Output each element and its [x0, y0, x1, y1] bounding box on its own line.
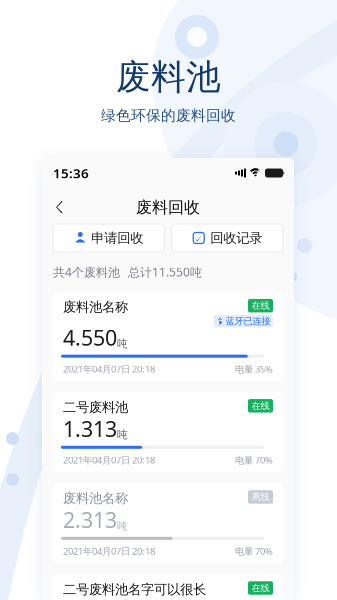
staticText: 2021年04月07日 20:18 — [63, 454, 155, 466]
staticText: 废料回收 — [136, 198, 200, 217]
staticText: 申请回收 — [91, 230, 143, 246]
staticText: 在线 — [251, 300, 269, 311]
staticText: 蓝牙已连接 — [225, 315, 270, 327]
staticText: 二号废料池名字可以很长 — [63, 581, 206, 598]
staticText: 15:36 — [53, 164, 89, 182]
button[interactable]: 废料池名称 — [53, 483, 283, 563]
staticText: 2021年04月07日 20:18 — [63, 363, 155, 375]
staticText: 吨 — [117, 519, 128, 532]
staticText: 1.313 — [63, 414, 117, 443]
staticText: 废料池名称 — [63, 299, 128, 315]
staticText: 在线 — [251, 582, 269, 594]
staticText: 电量 35% — [235, 363, 273, 375]
staticText: 2021年04月07日 20:18 — [63, 545, 155, 557]
staticText: 电量 70% — [235, 454, 273, 466]
staticText: 废料池 — [116, 56, 221, 99]
staticText: 回收记录 — [210, 230, 262, 246]
staticText: 共4个废料池 总计11.550吨 — [53, 264, 202, 280]
staticText: 在线 — [251, 400, 269, 412]
button[interactable]: 废料池名称 — [53, 292, 283, 381]
button[interactable]: 回收记录 — [171, 224, 283, 252]
staticText: 绿色环保的废料回收 — [101, 107, 236, 125]
staticText: 2.313 — [63, 506, 117, 534]
button[interactable]: 返回 — [53, 196, 66, 219]
staticText: 二号废料池 — [63, 399, 128, 415]
staticText: 离线 — [251, 491, 269, 503]
staticText: 吨 — [117, 337, 128, 350]
button[interactable]: 二号废料池 — [53, 392, 283, 472]
staticText: 废料池名称 — [63, 490, 128, 507]
staticText: 电量 70% — [235, 545, 273, 557]
staticText: 吨 — [117, 428, 128, 441]
staticText: 4.550 — [63, 323, 117, 352]
button[interactable]: 申请回收 — [53, 224, 164, 252]
button[interactable]: 二号废料池名字可以很长 — [53, 574, 283, 600]
